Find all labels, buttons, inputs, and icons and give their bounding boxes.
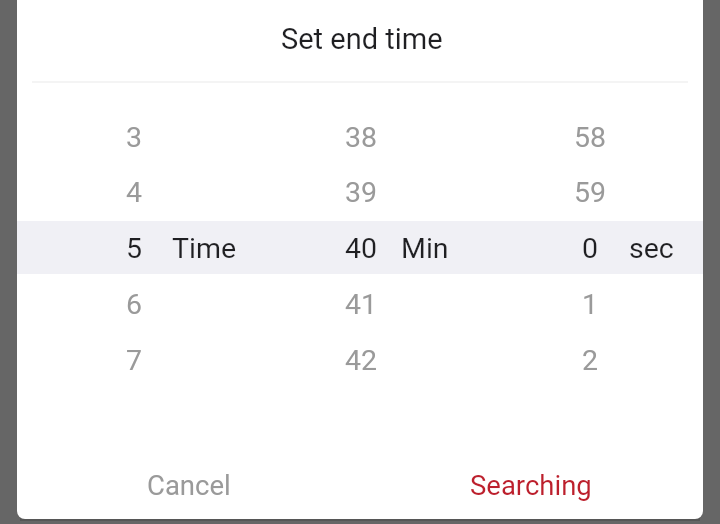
- staticText: sec: [629, 232, 674, 265]
- button[interactable]: 41: [245, 277, 474, 331]
- staticText: 3: [126, 121, 143, 154]
- button[interactable]: 2: [474, 333, 703, 387]
- staticText: 58: [574, 121, 607, 154]
- button[interactable]: 42: [245, 333, 474, 387]
- staticText: Set end time: [281, 22, 443, 56]
- staticText: Searching: [470, 469, 592, 501]
- staticText: 42: [345, 344, 378, 377]
- staticText: 5: [126, 232, 143, 265]
- staticText: 41: [345, 288, 378, 321]
- button[interactable]: 38: [245, 110, 474, 164]
- button[interactable]: 4: [17, 165, 245, 219]
- staticText: 39: [345, 176, 378, 209]
- button[interactable]: 7: [17, 333, 245, 387]
- staticText: Time: [172, 232, 237, 265]
- staticText: 0: [582, 232, 599, 265]
- staticText: 59: [574, 176, 607, 209]
- button[interactable]: 40: [245, 221, 474, 275]
- staticText: Min: [401, 232, 449, 265]
- staticText: 6: [126, 288, 143, 321]
- staticText: 2: [582, 344, 599, 377]
- button[interactable]: 3: [17, 110, 245, 164]
- staticText: 40: [345, 232, 378, 265]
- button[interactable]: 58: [474, 110, 703, 164]
- button[interactable]: 1: [474, 277, 703, 331]
- staticText: 4: [126, 176, 143, 209]
- staticText: Cancel: [147, 469, 231, 501]
- staticText: 7: [126, 344, 143, 377]
- button[interactable]: 6: [17, 277, 245, 331]
- button[interactable]: 0: [474, 221, 703, 275]
- button[interactable]: 5: [17, 221, 245, 275]
- staticText: 38: [345, 121, 378, 154]
- button[interactable]: 59: [474, 165, 703, 219]
- button[interactable]: Cancel: [88, 455, 290, 515]
- staticText: 1: [582, 288, 599, 321]
- button[interactable]: Searching: [431, 455, 631, 515]
- button[interactable]: 39: [245, 165, 474, 219]
